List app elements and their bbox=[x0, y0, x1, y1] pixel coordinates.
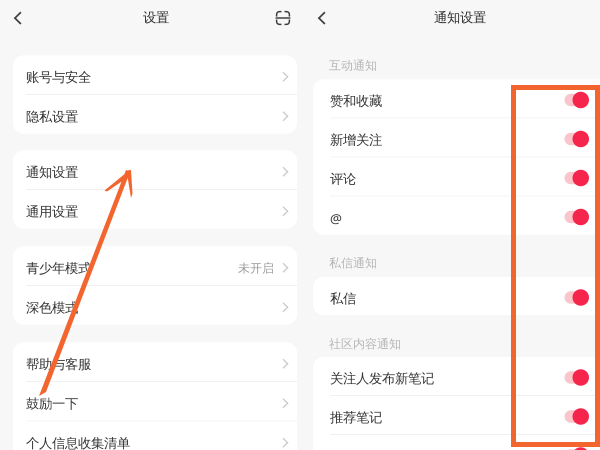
staticText: 新增关注 bbox=[330, 132, 382, 148]
staticText: 评论 bbox=[330, 171, 356, 187]
button[interactable]: Back bbox=[308, 2, 335, 34]
staticText: 关注人发布新笔记 bbox=[330, 370, 434, 387]
button[interactable]: 关注人发布新笔记 notifications bbox=[564, 367, 589, 384]
button[interactable]: 通知设置 bbox=[13, 150, 297, 189]
button[interactable]: 赞和收藏 notifications bbox=[564, 90, 589, 107]
button[interactable]: 新增关注 notifications bbox=[564, 129, 589, 146]
staticText: 帮助与客服 bbox=[26, 356, 91, 372]
staticText: 未开启 bbox=[238, 261, 274, 276]
staticText: 赞和收藏 bbox=[330, 93, 382, 109]
button[interactable]: 深色模式 bbox=[13, 286, 297, 324]
staticText: 深色模式 bbox=[26, 300, 78, 316]
button[interactable]: 推荐我可能感兴趣的人 notifications bbox=[564, 445, 589, 450]
staticText: 个人信息收集清单 bbox=[26, 435, 130, 450]
button[interactable]: 隐私设置 bbox=[13, 95, 297, 133]
staticText: @ bbox=[330, 209, 342, 227]
button[interactable]: Back bbox=[4, 2, 31, 34]
button[interactable]: 鼓励一下 bbox=[13, 382, 297, 420]
staticText: 社区内容通知 bbox=[329, 337, 401, 351]
button[interactable]: 评论 notifications bbox=[564, 168, 589, 185]
staticText: 隐私设置 bbox=[26, 109, 78, 125]
staticText: 鼓励一下 bbox=[26, 396, 78, 412]
button[interactable]: 个人信息收集清单 bbox=[13, 421, 297, 450]
staticText: 账号与安全 bbox=[26, 69, 91, 85]
staticText: 通用设置 bbox=[26, 204, 78, 220]
staticText: 私信通知 bbox=[329, 256, 377, 270]
staticText: 通知设置 bbox=[26, 164, 78, 180]
staticText: 青少年模式 bbox=[26, 260, 91, 276]
staticText: 互动通知 bbox=[329, 58, 377, 73]
staticText: 推荐笔记 bbox=[330, 409, 382, 426]
button[interactable]: 通用设置 bbox=[13, 190, 297, 228]
button[interactable]: 私信 notifications bbox=[564, 287, 589, 304]
staticText: 私信 bbox=[330, 290, 356, 307]
button[interactable]: 青少年模式 bbox=[13, 246, 297, 285]
button[interactable]: @ notifications bbox=[564, 207, 589, 224]
staticText: 通知设置 bbox=[434, 9, 486, 26]
button[interactable]: 帮助与客服 bbox=[13, 342, 297, 381]
staticText: 设置 bbox=[143, 9, 169, 26]
button[interactable]: 账号与安全 bbox=[13, 55, 297, 94]
button[interactable]: Scan bbox=[267, 2, 298, 33]
button[interactable]: 推荐笔记 notifications bbox=[564, 406, 589, 423]
